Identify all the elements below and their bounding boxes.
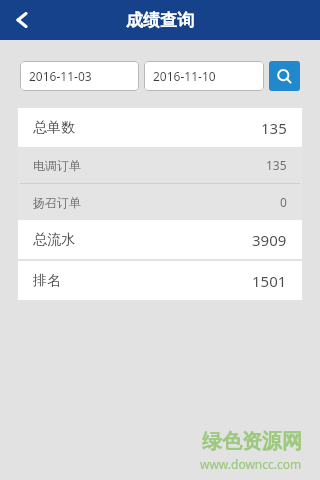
staticText: 0 [280,194,287,210]
staticText: 成绩查询 [126,10,194,31]
button[interactable]: 排名 [18,261,302,300]
button[interactable]: Search [269,61,300,91]
button[interactable]: 2016-11-03 [20,61,139,91]
staticText: 1501 [252,271,287,291]
button[interactable]: 扬召订单 [18,184,302,220]
button[interactable]: 2016-11-10 [144,61,264,91]
staticText: 扬召订单 [33,195,81,210]
staticText: 电调订单 [33,158,81,173]
staticText: 总流水 [33,231,75,249]
button[interactable]: Back [0,0,44,40]
button[interactable]: 总流水 [18,220,302,259]
staticText: 2016-11-10 [153,68,216,84]
staticText: 135 [266,157,287,173]
staticText: 排名 [33,272,61,290]
button[interactable]: 电调订单 [18,147,302,183]
staticText: 总单数 [33,119,75,137]
staticText: 2016-11-03 [29,68,92,84]
staticText: 3909 [252,230,287,250]
button[interactable]: 总单数 [18,108,302,147]
staticText: 135 [261,118,287,138]
staticText: www.downcc.com [200,456,302,472]
staticText: 绿色资源网 [202,429,302,454]
